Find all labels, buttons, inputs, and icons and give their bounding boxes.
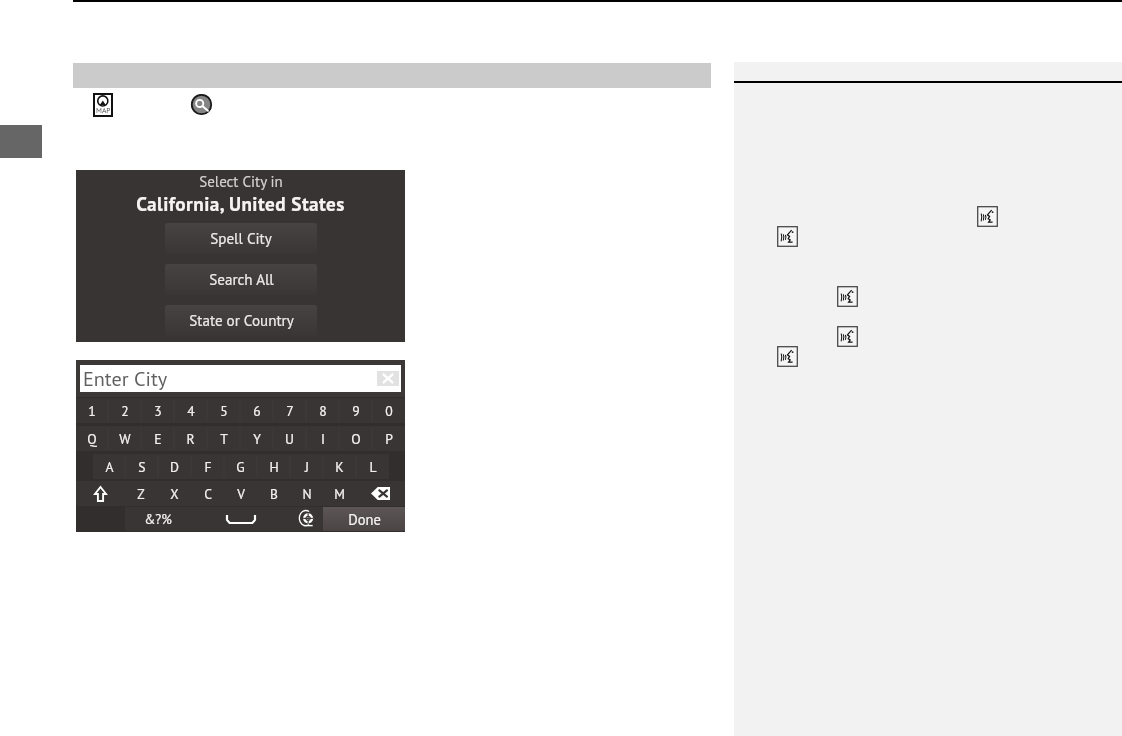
button[interactable]: I xyxy=(306,426,339,451)
button[interactable]: Z xyxy=(124,481,158,506)
staticText: L xyxy=(369,458,377,476)
staticText: Search All xyxy=(209,270,274,290)
staticText: 5 xyxy=(220,402,228,420)
staticText: X xyxy=(170,485,179,502)
staticText: U xyxy=(285,430,294,448)
staticText: V xyxy=(237,485,245,502)
staticText: H xyxy=(269,458,279,476)
button[interactable]: M xyxy=(323,481,356,506)
button[interactable]: D xyxy=(158,454,191,479)
staticText: Z xyxy=(137,485,145,502)
button[interactable]: MAP button xyxy=(93,93,113,117)
button[interactable]: 4 xyxy=(174,398,207,423)
staticText: 4 xyxy=(187,402,195,420)
staticText: T xyxy=(220,430,228,448)
button[interactable]: Y xyxy=(240,426,273,451)
button[interactable]: G xyxy=(224,454,257,479)
staticText: K xyxy=(335,458,344,476)
staticText: S xyxy=(138,458,146,476)
button[interactable]: N xyxy=(290,481,323,506)
button[interactable]: Spell City xyxy=(165,223,317,254)
staticText: A xyxy=(105,458,114,476)
staticText: Spell City xyxy=(210,229,272,249)
staticText: 2 xyxy=(121,402,129,420)
staticText: MAP xyxy=(96,105,111,115)
staticText: E xyxy=(154,430,162,448)
button[interactable]: B xyxy=(257,481,290,506)
button[interactable]: 7 xyxy=(273,398,306,423)
staticText: O xyxy=(351,430,361,448)
button[interactable]: &?% xyxy=(125,507,190,531)
button[interactable]: R xyxy=(174,426,207,451)
staticText: M xyxy=(334,485,345,502)
staticText: J xyxy=(305,458,309,476)
button[interactable]: Voice command xyxy=(977,206,998,227)
staticText: B xyxy=(270,485,278,502)
button[interactable]: Space xyxy=(190,507,291,531)
button[interactable]: J xyxy=(290,454,323,479)
button[interactable]: Search All xyxy=(165,264,317,295)
button[interactable]: Shift xyxy=(76,481,124,506)
button[interactable]: Done xyxy=(323,507,405,531)
staticText: &?% xyxy=(144,510,172,528)
staticText: California, United States xyxy=(136,191,345,216)
button[interactable]: A xyxy=(93,454,125,479)
button[interactable]: Backspace xyxy=(356,481,405,506)
button[interactable]: 2 xyxy=(108,398,141,423)
staticText: Enter City xyxy=(83,365,168,391)
staticText: C xyxy=(204,485,212,502)
button[interactable]: E xyxy=(141,426,174,451)
staticText: D xyxy=(170,458,179,476)
button[interactable]: Clear text xyxy=(377,371,399,386)
button[interactable]: State or Country xyxy=(165,305,317,336)
button[interactable]: T xyxy=(207,426,240,451)
button[interactable]: P xyxy=(372,426,405,451)
button[interactable]: 6 xyxy=(240,398,273,423)
staticText: N xyxy=(302,485,312,502)
staticText: 8 xyxy=(319,402,327,420)
button[interactable]: 3 xyxy=(141,398,174,423)
button[interactable]: V xyxy=(224,481,257,506)
button[interactable]: Voice command xyxy=(777,346,798,367)
staticText: F xyxy=(204,458,212,476)
staticText: Q xyxy=(87,430,97,448)
button[interactable]: X xyxy=(158,481,191,506)
staticText: P xyxy=(385,430,393,448)
button[interactable]: 0 xyxy=(372,398,405,423)
staticText: Y xyxy=(253,430,261,448)
button[interactable]: L xyxy=(356,454,389,479)
staticText: Done xyxy=(348,510,381,529)
staticText: 0 xyxy=(385,402,393,420)
button[interactable]: Voice command xyxy=(837,326,858,347)
button[interactable]: 5 xyxy=(207,398,240,423)
button[interactable]: O xyxy=(339,426,372,451)
staticText: 7 xyxy=(286,402,294,420)
button[interactable]: S xyxy=(125,454,158,479)
staticText: 6 xyxy=(253,402,261,420)
staticText: G xyxy=(236,458,245,476)
button[interactable]: Voice command xyxy=(777,226,798,247)
staticText: R xyxy=(186,430,195,448)
button[interactable]: Search xyxy=(191,94,212,115)
button[interactable]: K xyxy=(323,454,356,479)
staticText: 1 xyxy=(88,402,96,420)
staticText: W xyxy=(119,430,131,448)
staticText: Select City in xyxy=(199,172,283,191)
button[interactable]: Voice command xyxy=(837,286,858,307)
button[interactable]: W xyxy=(108,426,141,451)
button[interactable]: 1 xyxy=(76,398,108,423)
button[interactable]: H xyxy=(257,454,290,479)
button[interactable]: U xyxy=(273,426,306,451)
staticText: State or Country xyxy=(189,311,294,331)
staticText: I xyxy=(321,430,325,448)
button[interactable]: 9 xyxy=(339,398,372,423)
button[interactable]: C xyxy=(191,481,224,506)
button[interactable]: Q xyxy=(76,426,108,451)
button[interactable]: 8 xyxy=(306,398,339,423)
button[interactable]: Change language xyxy=(291,507,323,531)
staticText: 3 xyxy=(154,402,162,420)
staticText: 9 xyxy=(352,402,360,420)
button[interactable]: F xyxy=(191,454,224,479)
